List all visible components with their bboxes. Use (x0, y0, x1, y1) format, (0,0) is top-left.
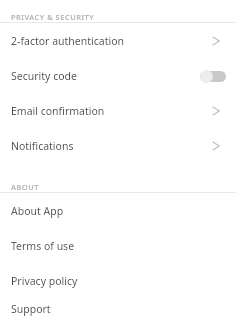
staticText: Security code (11, 69, 77, 83)
staticText: PRIVACY & SECURITY (11, 12, 95, 22)
button[interactable]: 2-factor authentication (0, 23, 236, 58)
button[interactable]: Privacy policy (0, 263, 236, 298)
button[interactable]: Open 2-factor authentication (206, 30, 228, 52)
button[interactable]: About App (0, 193, 236, 228)
staticText: Terms of use (11, 239, 75, 253)
button[interactable]: Open notifications (206, 135, 228, 157)
button[interactable]: Security code (0, 58, 236, 93)
button[interactable]: Notifications (0, 128, 236, 163)
staticText: About App (11, 204, 64, 218)
button[interactable]: Toggle security code (198, 65, 228, 87)
button[interactable]: Support (0, 298, 236, 320)
button[interactable]: Email confirmation (0, 93, 236, 128)
staticText: Support (11, 302, 51, 316)
staticText: Privacy policy (11, 274, 78, 288)
button[interactable]: Terms of use (0, 228, 236, 263)
button[interactable]: Open email confirmation (206, 100, 228, 122)
staticText: Notifications (11, 139, 74, 153)
staticText: 2-factor authentication (11, 34, 124, 48)
staticText: Email confirmation (11, 104, 105, 118)
staticText: ABOUT (11, 182, 39, 192)
